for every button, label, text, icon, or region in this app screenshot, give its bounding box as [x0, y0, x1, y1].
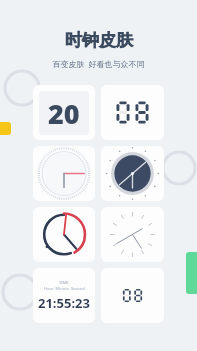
staticText: 21:55:23 — [38, 294, 90, 312]
button[interactable]: Light analog clock skin — [33, 146, 95, 201]
staticText: 百变皮肤 好看也与众不同 — [52, 58, 145, 69]
button[interactable]: Seven segment clock skin — [101, 85, 164, 140]
staticText: Hour Minute Second — [44, 286, 85, 291]
button[interactable]: Arc clock skin — [33, 207, 95, 262]
button[interactable]: Digital time clock skin — [33, 268, 95, 323]
button[interactable]: Dark analog clock skin — [101, 146, 164, 201]
button[interactable]: Seven segment clock skin — [101, 268, 164, 323]
staticText: TIME — [59, 280, 69, 285]
staticText: 20 — [48, 95, 80, 132]
button[interactable]: Big number clock skin — [33, 85, 95, 140]
staticText: 时钟皮肤 — [65, 30, 133, 51]
button[interactable]: Thin line analog clock skin — [101, 207, 164, 262]
